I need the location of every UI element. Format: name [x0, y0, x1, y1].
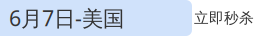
- staticText: 6月7日-美国: [9, 4, 124, 32]
- button[interactable]: 立即秒杀: [194, 9, 266, 27]
- staticText: 立即秒杀: [194, 9, 254, 27]
